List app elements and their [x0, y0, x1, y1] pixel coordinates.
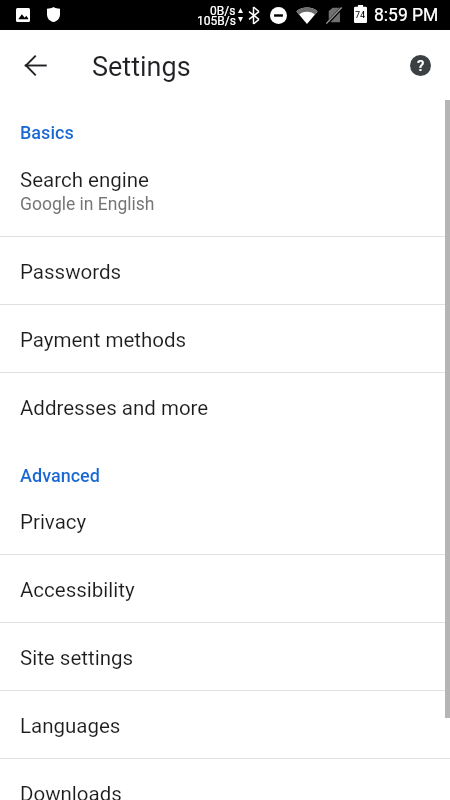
staticText: Downloads: [20, 782, 122, 800]
staticText: Advanced: [20, 465, 100, 486]
staticText: Basics: [20, 122, 74, 143]
button[interactable]: Back: [14, 44, 56, 86]
staticText: Google in English: [20, 194, 155, 215]
staticText: 8:59 PM: [374, 5, 439, 26]
button[interactable]: Languages: [0, 691, 450, 758]
button[interactable]: Payment methods: [0, 305, 450, 372]
button[interactable]: Addresses and more: [0, 373, 450, 440]
button[interactable]: Help: [399, 44, 441, 86]
button[interactable]: Passwords: [0, 237, 450, 304]
button[interactable]: Privacy: [0, 487, 450, 554]
staticText: Privacy: [20, 510, 87, 534]
staticText: 0B/s: [210, 4, 236, 18]
button[interactable]: Accessibility: [0, 555, 450, 622]
staticText: Site settings: [20, 646, 134, 670]
staticText: Addresses and more: [20, 396, 209, 420]
staticText: Languages: [20, 714, 121, 738]
staticText: Accessibility: [20, 578, 135, 602]
staticText: 74: [355, 10, 366, 21]
staticText: Passwords: [20, 260, 122, 284]
button[interactable]: Downloads: [0, 759, 450, 800]
button[interactable]: Site settings: [0, 623, 450, 690]
staticText: Payment methods: [20, 328, 187, 352]
staticText: Search engine: [20, 168, 149, 192]
staticText: 105B/s: [197, 14, 236, 28]
staticText: ?: [417, 57, 425, 75]
button[interactable]: Search engine: [0, 152, 450, 236]
staticText: Settings: [92, 51, 191, 83]
